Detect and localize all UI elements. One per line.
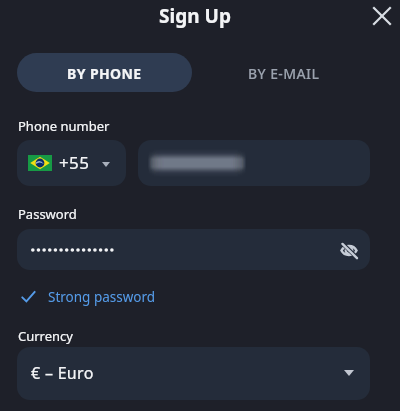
button[interactable]: Show password [331,232,367,268]
button[interactable]: Close [365,0,399,33]
staticText: BY PHONE [67,64,142,83]
button[interactable]: Show password [17,229,370,270]
staticText: Phone number [18,117,110,135]
staticText: € – Euro [31,362,94,384]
staticText: +55 [59,151,90,174]
staticText: Sign Up [0,3,395,29]
button[interactable]: BY E-MAIL [196,53,371,92]
button[interactable] [138,140,370,186]
button[interactable]: +55 [17,140,126,186]
staticText: BY E-MAIL [248,64,320,83]
button[interactable]: Strong password [20,285,156,309]
button[interactable]: € – Euro [17,347,370,400]
staticText: Password [18,205,77,223]
button[interactable]: BY PHONE [17,53,192,92]
staticText: Strong password [48,288,156,306]
staticText: Currency [18,327,73,345]
